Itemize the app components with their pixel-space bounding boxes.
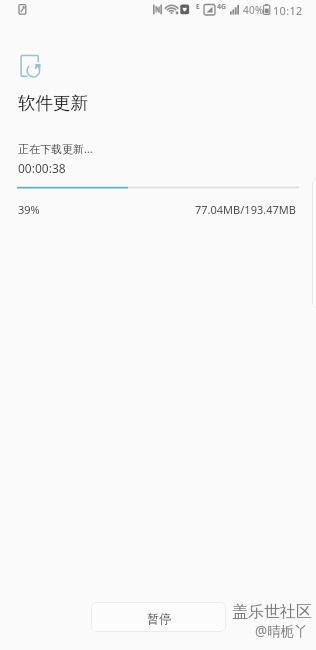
staticText: 39% — [18, 202, 40, 217]
button[interactable]: Software update — [19, 52, 43, 78]
staticText: @晴栀丫 — [255, 622, 308, 640]
staticText: 暂停 — [147, 611, 171, 626]
button[interactable]: 暂停 — [91, 602, 226, 632]
staticText: 40% — [243, 3, 264, 17]
staticText: 正在下载更新… — [18, 141, 93, 156]
staticText: E — [196, 2, 200, 11]
staticText: 4G — [217, 2, 227, 12]
staticText: 77.04MB/193.47MB — [195, 202, 296, 217]
staticText: 00:00:38 — [18, 160, 66, 176]
staticText: 软件更新 — [18, 92, 88, 114]
button[interactable]: Open edge panel — [312, 178, 316, 308]
staticText: 盖乐世社区 — [232, 602, 312, 622]
staticText: 10:12 — [273, 3, 303, 18]
